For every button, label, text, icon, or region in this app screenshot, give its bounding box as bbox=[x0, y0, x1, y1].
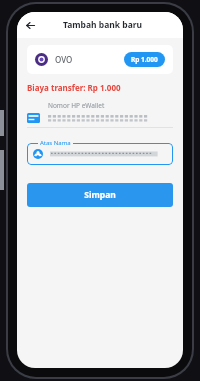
button[interactable]: OVO bbox=[27, 45, 173, 74]
staticText: Rp 1.000 bbox=[131, 55, 158, 64]
button[interactable]: Rp 1.000 bbox=[124, 52, 165, 67]
staticText: OVO bbox=[55, 54, 73, 65]
button[interactable] bbox=[27, 143, 173, 165]
button[interactable]: Back bbox=[21, 16, 39, 34]
button[interactable]: Simpan bbox=[27, 183, 173, 207]
button[interactable] bbox=[27, 113, 173, 123]
staticText: Nomor HP eWallet bbox=[48, 101, 105, 110]
staticText: Biaya transfer: Rp 1.000 bbox=[27, 82, 121, 93]
staticText: Tambah bank baru bbox=[63, 19, 143, 31]
staticText: Simpan bbox=[84, 189, 116, 201]
staticText: Atas Nama bbox=[40, 139, 71, 147]
